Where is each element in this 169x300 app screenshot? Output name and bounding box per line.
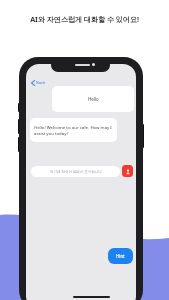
staticText: Hello! Welcome to our cafe. How may I as… xyxy=(34,124,113,136)
staticText: Back xyxy=(36,80,46,86)
button[interactable]: Hint xyxy=(108,248,133,264)
button[interactable]: Voice input xyxy=(122,165,133,177)
staticText: Hello xyxy=(88,96,99,102)
staticText: AI와 자연스럽게 대화할 수 있어요! xyxy=(30,14,139,24)
button[interactable]: 여기에 한국어 질문이 표시됩니다 xyxy=(31,166,120,177)
staticText: 여기에 한국어 질문이 표시됩니다 xyxy=(50,169,102,174)
button[interactable]: Back xyxy=(29,79,48,87)
staticText: Hint xyxy=(116,253,125,259)
